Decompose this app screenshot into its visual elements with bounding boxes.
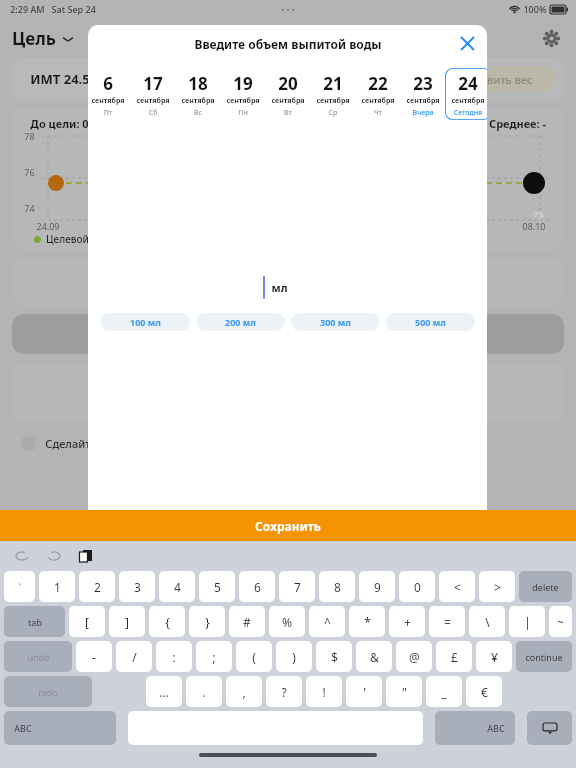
staticText: Сегодня [445, 108, 487, 118]
button[interactable]: ¥ [476, 641, 512, 672]
button[interactable]: 22 [355, 68, 401, 120]
button[interactable]: 21 [310, 68, 356, 120]
button[interactable]: : [156, 641, 192, 672]
staticText: 500 мл [415, 316, 446, 328]
staticText: ИМТ 24.5 [30, 70, 90, 88]
staticText: ! [322, 684, 326, 700]
button[interactable]: @ [396, 641, 432, 672]
button[interactable]: = [429, 606, 465, 637]
button[interactable]: 500 мл [386, 313, 475, 331]
button[interactable]: - [76, 641, 112, 672]
button[interactable]: 3 [119, 571, 155, 602]
staticText: continue [525, 651, 563, 663]
staticText: ABC [487, 722, 505, 734]
button[interactable]: $ [316, 641, 352, 672]
button[interactable]: 6 [88, 68, 131, 120]
button[interactable]: 4 [159, 571, 195, 602]
button[interactable]: ` [4, 571, 35, 602]
staticText: $ [331, 649, 338, 665]
button[interactable]: 24 [445, 68, 487, 120]
button[interactable]: ^ [309, 606, 345, 637]
button[interactable]: 19 [220, 68, 266, 120]
button[interactable]: [ [69, 606, 105, 637]
button[interactable]: ! [306, 676, 342, 707]
button[interactable]: > [479, 571, 515, 602]
staticText: 22 [355, 72, 401, 95]
button[interactable]: & [356, 641, 392, 672]
button[interactable]: Redo [42, 544, 66, 568]
button[interactable]: ~ [549, 606, 572, 637]
button[interactable]: delete [519, 571, 572, 602]
button[interactable]: 6 [239, 571, 275, 602]
button[interactable]: Hide keyboard [527, 711, 572, 745]
button[interactable]: { [149, 606, 185, 637]
button[interactable]: ABC [435, 711, 515, 745]
staticText: сентября [175, 96, 221, 106]
button[interactable]: 7 [279, 571, 315, 602]
button[interactable]: ( [236, 641, 272, 672]
button[interactable]: * [349, 606, 385, 637]
button[interactable]: + [389, 606, 425, 637]
staticText: undo [27, 651, 50, 663]
button[interactable]: 8 [319, 571, 355, 602]
staticText: ~ [557, 614, 564, 630]
button[interactable]: 300 мл [291, 313, 380, 331]
button[interactable]: # [229, 606, 265, 637]
button[interactable]: \ [469, 606, 505, 637]
button[interactable]: Сделайте в [12, 430, 564, 456]
staticText: + [404, 614, 411, 630]
staticText: . [202, 684, 206, 700]
button[interactable]: 23 [400, 68, 446, 120]
button[interactable]: < [439, 571, 475, 602]
button[interactable]: % [269, 606, 305, 637]
staticText: { [165, 614, 170, 630]
button[interactable]: ] [109, 606, 145, 637]
button[interactable]: redo [4, 676, 92, 707]
button[interactable]: . [186, 676, 222, 707]
button[interactable]: undo [4, 641, 72, 672]
staticText: 6 [88, 72, 131, 95]
button[interactable]: 100 мл [100, 313, 190, 331]
button[interactable]: ) [276, 641, 312, 672]
button[interactable]: … [146, 676, 182, 707]
button[interactable]: ' [346, 676, 382, 707]
staticText: ^ [324, 614, 331, 630]
button[interactable]: 20 [265, 68, 311, 120]
staticText: \ [485, 614, 490, 630]
button[interactable]: _ [426, 676, 462, 707]
staticText: _ [441, 684, 447, 700]
button[interactable]: 200 мл [196, 313, 285, 331]
button[interactable]: 17 [130, 68, 176, 120]
button[interactable]: Цель [12, 27, 74, 50]
staticText: " [402, 684, 407, 700]
button[interactable]: Undo [10, 544, 34, 568]
button[interactable]: ; [196, 641, 232, 672]
staticText: 6 [254, 579, 261, 595]
button[interactable]: ABC [4, 711, 116, 745]
button[interactable]: } [189, 606, 225, 637]
button[interactable]: Paste [74, 544, 98, 568]
button[interactable]: Close [455, 31, 479, 55]
button[interactable]: ? [266, 676, 302, 707]
button[interactable]: / [116, 641, 152, 672]
staticText: 100% [523, 3, 547, 15]
button[interactable]: Сохранить [0, 510, 576, 541]
button[interactable]: continue [516, 641, 572, 672]
button[interactable]: £ [436, 641, 472, 672]
button[interactable]: tab [4, 606, 65, 637]
button[interactable]: Settings [538, 25, 564, 51]
button[interactable]: 18 [175, 68, 221, 120]
button[interactable]: | [509, 606, 545, 637]
button[interactable]: 5 [199, 571, 235, 602]
staticText: 1 [54, 579, 61, 595]
button[interactable]: 2 [79, 571, 115, 602]
staticText: € [481, 684, 488, 700]
button[interactable]: " [386, 676, 422, 707]
button[interactable]: 1 [39, 571, 75, 602]
button[interactable]: 9 [359, 571, 395, 602]
staticText: [ [85, 614, 89, 630]
button[interactable]: € [466, 676, 502, 707]
button[interactable]: , [226, 676, 262, 707]
button[interactable]: 0 [399, 571, 435, 602]
